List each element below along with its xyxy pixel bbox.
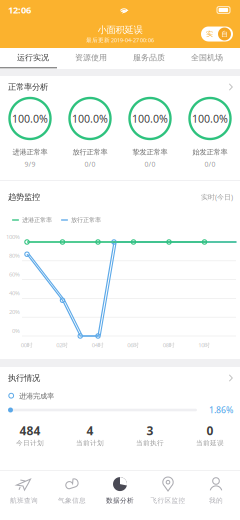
staticText: 气象信息 <box>58 496 86 505</box>
staticText: 小面积延误 <box>97 24 142 36</box>
staticText: 航班查询 <box>10 496 38 505</box>
button[interactable]: 气象信息 <box>48 471 96 511</box>
button[interactable]: 运行实况 <box>4 48 62 67</box>
button[interactable]: 切换实时自动模式 <box>200 23 234 45</box>
staticText: 02时 <box>56 341 68 349</box>
staticText: 60% <box>9 270 20 278</box>
staticText: 100.0% <box>192 111 228 126</box>
staticText: 进港正常率 <box>12 147 47 157</box>
button[interactable]: 数据分析 <box>96 471 144 511</box>
button[interactable]: 执行情况 <box>0 367 240 389</box>
button[interactable]: 正常率分析 <box>0 76 240 98</box>
staticText: 运行实况 <box>17 52 49 63</box>
staticText: 3 <box>146 422 153 439</box>
staticText: 始发正常率 <box>192 147 227 157</box>
staticText: 1.86% <box>209 404 233 416</box>
staticText: 进港正常率 <box>22 216 52 224</box>
staticText: 10时 <box>198 341 210 349</box>
button[interactable]: 服务品质 <box>120 48 178 67</box>
staticText: 执行情况 <box>8 373 40 383</box>
button[interactable]: 全国机场 <box>178 48 236 67</box>
staticText: 0% <box>12 327 20 335</box>
staticText: 飞行区监控 <box>150 496 185 505</box>
staticText: 实 <box>206 30 213 38</box>
staticText: 0/0 <box>144 159 155 169</box>
button[interactable]: 飞行区监控 <box>144 471 192 511</box>
staticText: 80% <box>9 251 20 259</box>
staticText: 放行正常率 <box>71 216 101 224</box>
staticText: 当前延误 <box>196 439 224 447</box>
staticText: 00时 <box>21 341 33 349</box>
button[interactable]: 我的 <box>192 471 240 511</box>
staticText: 4 <box>86 422 93 439</box>
staticText: 当前计划 <box>76 439 104 447</box>
staticText: 100% <box>6 233 20 241</box>
staticText: 放行正常率 <box>72 147 107 157</box>
staticText: 9/9 <box>24 159 35 169</box>
staticText: 当前执行 <box>136 439 164 447</box>
staticText: 数据分析 <box>106 496 134 505</box>
staticText: 服务品质 <box>133 52 165 63</box>
staticText: 正常率分析 <box>8 82 48 92</box>
staticText: 0 <box>206 422 213 439</box>
staticText: 挚发正常率 <box>132 147 167 157</box>
staticText: 今日计划 <box>16 439 44 447</box>
button[interactable]: 趋势监控 <box>0 181 240 213</box>
staticText: 资源使用 <box>75 52 107 63</box>
staticText: 实时(今日) <box>201 192 233 202</box>
staticText: 100.0% <box>132 111 168 126</box>
staticText: 40% <box>9 289 20 297</box>
staticText: 最后更新 2019-04-27 00:06 <box>86 36 154 44</box>
staticText: 06时 <box>127 341 139 349</box>
staticText: 100.0% <box>12 111 48 126</box>
staticText: 0/0 <box>84 159 95 169</box>
staticText: 进港完成率 <box>19 391 54 401</box>
staticText: 08时 <box>163 341 175 349</box>
staticText: 全国机场 <box>191 52 223 63</box>
staticText: 0/0 <box>204 159 215 169</box>
button[interactable]: 资源使用 <box>62 48 120 67</box>
button[interactable]: 航班查询 <box>0 471 48 511</box>
staticText: 484 <box>19 422 40 439</box>
staticText: 20% <box>9 308 20 316</box>
staticText: 我的 <box>209 496 223 505</box>
staticText: 12:06 <box>8 4 31 16</box>
staticText: 自 <box>221 30 228 38</box>
staticText: 趋势监控 <box>8 192 40 202</box>
staticText: 100.0% <box>72 111 108 126</box>
staticText: 04时 <box>92 341 104 349</box>
